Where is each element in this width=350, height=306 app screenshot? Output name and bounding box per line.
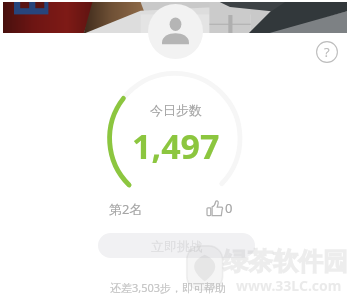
staticText: 绿茶软件园 [223,246,348,277]
staticText: 今日步数 [150,102,202,118]
button[interactable]: Help [316,41,338,63]
staticText: ? [324,43,330,61]
button[interactable]: 第2名 [109,200,143,218]
staticText: 0 [225,199,233,217]
staticText: 1,497 [132,123,220,169]
staticText: www.33LC.com [236,276,342,295]
staticText: 还差3,503步，即可帮助 [110,280,227,295]
button[interactable]: Like [206,199,233,217]
button[interactable]: Profile avatar [148,4,203,59]
staticText: 立即挑战 [151,238,203,254]
button[interactable]: 立即挑战 [98,233,255,258]
